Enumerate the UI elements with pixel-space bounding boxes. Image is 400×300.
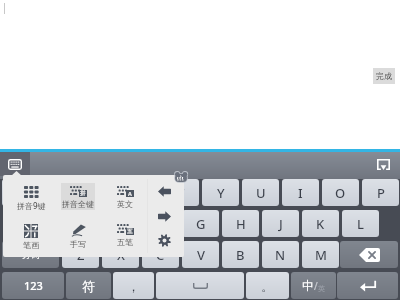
staticText: B bbox=[236, 246, 245, 264]
staticText: S bbox=[77, 215, 85, 233]
staticText: P bbox=[377, 184, 385, 202]
staticText: 拼音9键 bbox=[17, 200, 46, 211]
button[interactable]: Backspace bbox=[340, 241, 398, 268]
button[interactable]: T bbox=[162, 179, 199, 206]
staticText: G bbox=[196, 215, 206, 233]
staticText: T bbox=[177, 184, 185, 202]
button[interactable]: C bbox=[142, 241, 179, 268]
staticText: A bbox=[128, 190, 132, 197]
staticText: I bbox=[298, 184, 303, 202]
staticText: C bbox=[156, 246, 165, 264]
staticText: N bbox=[275, 246, 286, 264]
staticText: 分词 bbox=[22, 249, 40, 260]
button[interactable]: I bbox=[282, 179, 319, 206]
button[interactable]: 完成 bbox=[373, 68, 395, 84]
button[interactable]: P bbox=[362, 179, 399, 206]
button[interactable]: 。 bbox=[246, 272, 289, 299]
button[interactable]: Input method bbox=[0, 152, 30, 176]
button[interactable]: S bbox=[62, 210, 99, 237]
staticText: 。 bbox=[261, 278, 274, 294]
staticText: D bbox=[116, 215, 126, 233]
button[interactable]: E bbox=[82, 179, 119, 206]
button[interactable]: A bbox=[102, 176, 148, 212]
staticText: ， bbox=[127, 278, 140, 294]
button[interactable]: 拼 bbox=[61, 183, 95, 210]
button[interactable]: V bbox=[182, 241, 219, 268]
staticText: U bbox=[256, 184, 266, 202]
button[interactable]: Previous bbox=[149, 179, 180, 203]
staticText: V bbox=[197, 246, 205, 264]
button[interactable]: 笔画 bbox=[8, 214, 54, 250]
staticText: 手写 bbox=[70, 239, 86, 249]
button[interactable]: N bbox=[262, 241, 299, 268]
staticText: 拼音全键 bbox=[62, 199, 94, 209]
button[interactable]: D bbox=[102, 210, 139, 237]
button[interactable]: M bbox=[302, 241, 339, 268]
button[interactable]: Chinese English bbox=[291, 272, 336, 299]
staticText: Z bbox=[77, 246, 85, 264]
button[interactable]: 拼音9键 bbox=[8, 176, 54, 212]
button[interactable]: G bbox=[182, 210, 219, 237]
button[interactable]: K bbox=[302, 210, 339, 237]
staticText: 中 bbox=[302, 278, 314, 293]
button[interactable]: 五 bbox=[102, 214, 148, 250]
button[interactable]: R bbox=[122, 179, 159, 206]
staticText: J bbox=[279, 215, 283, 233]
button[interactable]: Segment bbox=[2, 241, 59, 268]
button[interactable]: B bbox=[222, 241, 259, 268]
staticText: 123 bbox=[24, 278, 43, 293]
staticText: M bbox=[315, 246, 327, 264]
staticText: K bbox=[316, 215, 325, 233]
button[interactable]: J bbox=[262, 210, 299, 237]
button[interactable]: F bbox=[142, 210, 179, 237]
staticText: L bbox=[357, 215, 364, 233]
staticText: 笔画 bbox=[23, 240, 39, 250]
button[interactable]: O bbox=[322, 179, 359, 206]
button[interactable]: U bbox=[242, 179, 279, 206]
staticText: Q bbox=[15, 184, 26, 202]
staticText: 符 bbox=[82, 278, 95, 294]
button[interactable]: Q bbox=[2, 179, 39, 206]
button[interactable]: W bbox=[42, 179, 79, 206]
button[interactable]: Z bbox=[62, 241, 99, 268]
button[interactable]: H bbox=[222, 210, 259, 237]
button[interactable]: 符 bbox=[66, 272, 111, 299]
staticText: 完成 bbox=[376, 71, 392, 81]
staticText: 英 bbox=[318, 284, 325, 293]
button[interactable]: Settings bbox=[149, 228, 180, 252]
button[interactable]: ， bbox=[113, 272, 154, 299]
button[interactable]: 123 bbox=[2, 272, 64, 299]
button[interactable]: A bbox=[22, 210, 59, 237]
staticText: 英文 bbox=[117, 199, 133, 209]
button[interactable]: Y bbox=[202, 179, 239, 206]
button[interactable]: X bbox=[102, 241, 139, 268]
staticText: W bbox=[54, 184, 67, 202]
staticText: A bbox=[36, 215, 45, 233]
button[interactable]: L bbox=[342, 210, 379, 237]
staticText: O bbox=[335, 184, 346, 202]
button[interactable]: Hide keyboard bbox=[370, 152, 397, 176]
staticText: F bbox=[157, 215, 164, 233]
staticText: Y bbox=[217, 184, 225, 202]
button[interactable]: Space bbox=[156, 272, 244, 299]
staticText: 拼 bbox=[80, 190, 86, 197]
staticText: 五笔 bbox=[117, 237, 133, 247]
staticText: / bbox=[314, 279, 318, 293]
staticText: X bbox=[117, 246, 125, 264]
staticText: 五 bbox=[127, 228, 133, 235]
button[interactable]: 手写 bbox=[55, 214, 101, 250]
button[interactable]: Next bbox=[149, 204, 180, 228]
button[interactable]: Enter bbox=[337, 272, 398, 299]
staticText: H bbox=[236, 215, 246, 233]
